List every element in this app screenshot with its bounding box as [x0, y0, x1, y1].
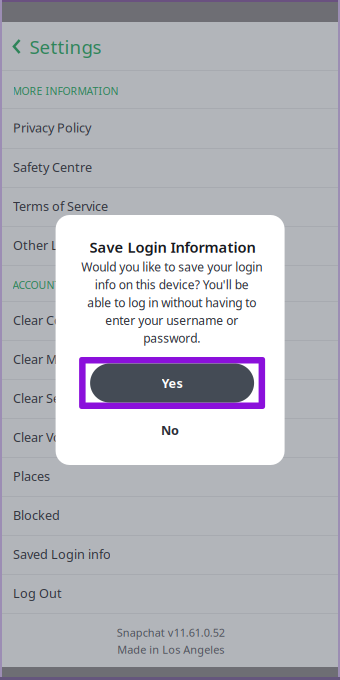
button[interactable]: Log Out	[0, 574, 340, 612]
staticText: MORE INFORMATION	[12, 84, 118, 98]
button[interactable]: Clear Voice Scan	[0, 418, 340, 456]
staticText: ACCOUNT ACTIONS	[12, 278, 108, 292]
button[interactable]: Yes	[79, 357, 265, 409]
staticText: Places	[13, 467, 50, 485]
staticText: Clear Conversations	[13, 311, 131, 329]
staticText: Would you like to save your login info o…	[81, 259, 262, 346]
staticText: Clear Voice Scan	[13, 428, 108, 446]
button[interactable]: No	[125, 415, 215, 445]
button[interactable]: Places	[0, 457, 340, 495]
staticText: Clear Search History	[13, 389, 131, 407]
button[interactable]: Saved Login info	[0, 535, 340, 573]
staticText: Settings	[30, 34, 102, 59]
button[interactable]: Other Legal	[0, 226, 340, 264]
staticText: Other Legal	[13, 236, 83, 254]
staticText: Clear Memories	[13, 350, 105, 368]
staticText: Saved Login info	[13, 545, 111, 563]
staticText: Save Login Information	[90, 237, 256, 257]
button[interactable]: Blocked	[0, 496, 340, 534]
staticText: Blocked	[13, 506, 60, 524]
staticText: No	[161, 421, 179, 439]
button[interactable]: Safety Centre	[0, 148, 340, 186]
staticText: Privacy Policy	[13, 119, 91, 136]
button[interactable]: Clear Memories	[0, 340, 340, 378]
button[interactable]: Settings	[0, 23, 190, 70]
button[interactable]: Clear Conversations	[0, 301, 340, 339]
button[interactable]: Terms of Service	[0, 187, 340, 225]
staticText: Made in Los Angeles	[117, 642, 224, 657]
staticText: Safety Centre	[13, 158, 92, 176]
button[interactable]: Privacy Policy	[0, 108, 340, 147]
staticText: Yes	[162, 374, 183, 392]
staticText: Log Out	[13, 584, 62, 602]
staticText: Snapchat v11.61.0.52	[117, 625, 225, 640]
button[interactable]: Clear Search History	[0, 379, 340, 417]
staticText: Terms of Service	[13, 197, 108, 215]
